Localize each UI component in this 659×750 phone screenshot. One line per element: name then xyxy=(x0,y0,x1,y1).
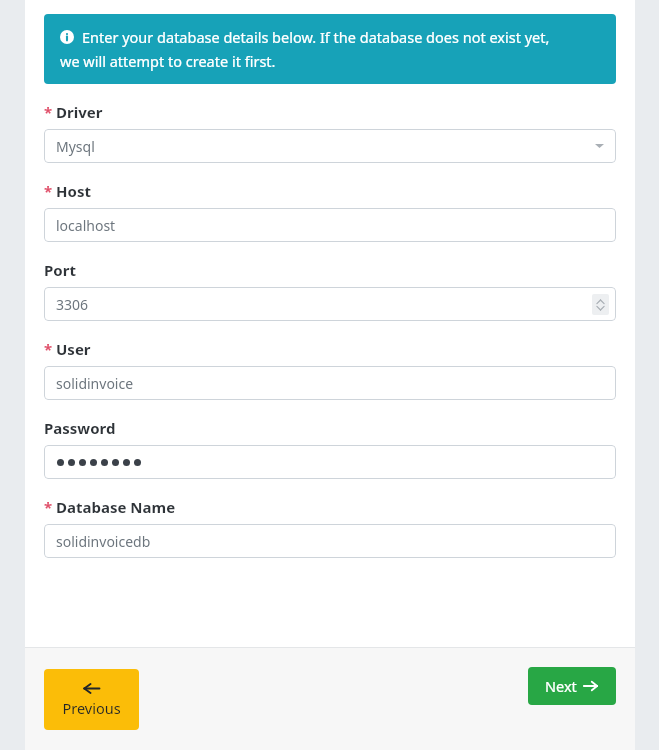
button[interactable]: Increase or decrease port xyxy=(592,294,609,315)
staticText: 3306 xyxy=(56,295,89,314)
staticText: we will attempt to create it first. xyxy=(60,51,276,71)
staticText: * Host xyxy=(44,181,91,201)
button[interactable]: Next xyxy=(528,667,616,705)
button[interactable]: solidinvoice xyxy=(44,366,616,400)
button[interactable]: 3306 xyxy=(44,287,616,321)
button[interactable]: localhost xyxy=(44,208,616,242)
button[interactable]: solidinvoicedb xyxy=(44,524,616,558)
staticText: Previous xyxy=(62,698,121,718)
staticText: Password xyxy=(44,418,116,438)
staticText: Port xyxy=(44,260,76,280)
staticText: solidinvoicedb xyxy=(56,532,151,551)
button[interactable] xyxy=(44,445,616,479)
staticText: * Database Name xyxy=(44,497,176,517)
staticText: Mysql xyxy=(56,137,95,156)
staticText: * User xyxy=(44,339,91,359)
staticText: localhost xyxy=(56,216,116,235)
staticText: * Driver xyxy=(44,102,103,122)
button[interactable]: Previous xyxy=(44,669,139,730)
staticText: Enter your database details below. If th… xyxy=(82,27,550,47)
staticText: Next xyxy=(545,676,577,696)
staticText: solidinvoice xyxy=(56,374,134,393)
button[interactable]: Mysql xyxy=(44,129,616,163)
